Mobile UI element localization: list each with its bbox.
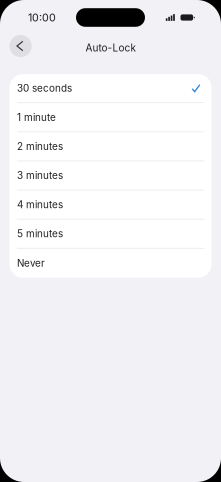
staticText: 3 minutes <box>17 169 63 181</box>
staticText: Auto-Lock <box>85 42 135 54</box>
staticText: 5 minutes <box>17 228 63 240</box>
staticText: 1 minute <box>17 111 56 123</box>
staticText: 4 minutes <box>17 199 63 210</box>
button[interactable]: 5 minutes <box>9 219 211 249</box>
staticText: 10:00 <box>28 11 56 24</box>
button[interactable]: 3 minutes <box>9 161 211 190</box>
button[interactable]: 2 minutes <box>9 132 211 161</box>
button[interactable]: 4 minutes <box>9 190 211 219</box>
button[interactable]: 30 seconds <box>9 74 211 103</box>
staticText: Never <box>17 257 45 269</box>
button[interactable]: Never <box>9 249 211 278</box>
staticText: 2 minutes <box>17 140 63 152</box>
staticText: 30 seconds <box>17 82 72 94</box>
button[interactable]: Back <box>9 35 32 57</box>
button[interactable]: 1 minute <box>9 103 211 132</box>
